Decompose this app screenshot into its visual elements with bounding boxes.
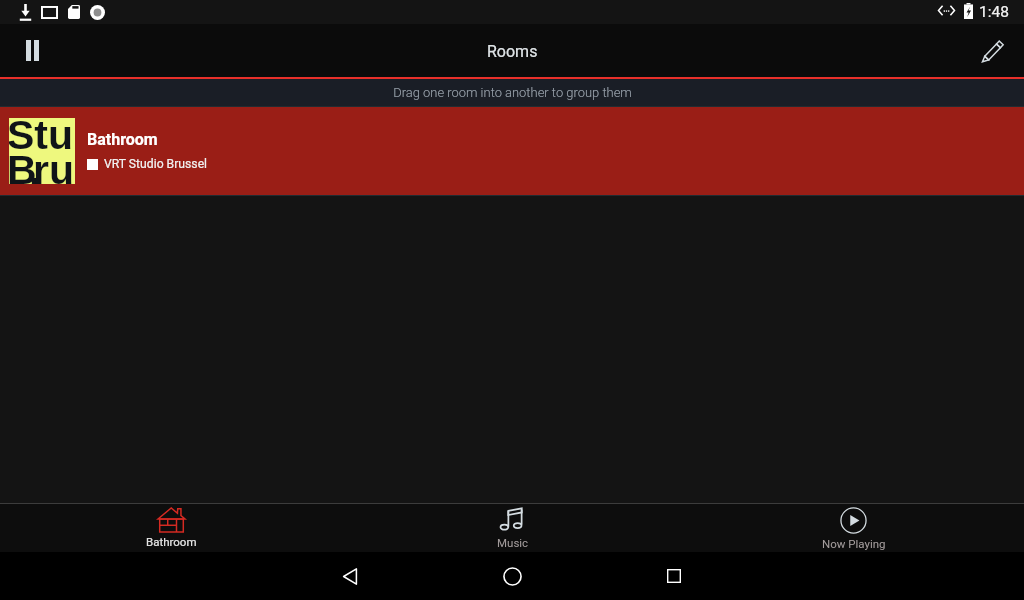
button[interactable]: Pause (0, 24, 64, 77)
button[interactable]: Now Playing (683, 504, 1024, 552)
staticText: Stu (9, 118, 73, 158)
staticText: VRT Studio Brussel (104, 157, 208, 171)
staticText: Bathroom (87, 130, 158, 149)
staticText: B (9, 147, 37, 184)
button[interactable]: Edit rooms (962, 24, 1024, 77)
button[interactable]: Stu (0, 107, 1024, 195)
staticText: . (29, 147, 41, 184)
button[interactable]: Music (342, 504, 683, 552)
staticText: Drag one room into another to group them (393, 85, 632, 100)
button[interactable]: Home (481, 552, 543, 600)
button[interactable]: Bathroom (0, 504, 342, 552)
staticText: Rooms (487, 42, 538, 61)
staticText: ru (33, 147, 74, 184)
button[interactable]: Back (219, 552, 481, 600)
staticText: 1:48 (979, 3, 1009, 21)
staticText: Music (497, 536, 529, 549)
button[interactable]: Recent apps (543, 552, 805, 600)
staticText: Now Playing (822, 537, 886, 550)
staticText: Bathroom (146, 535, 197, 548)
